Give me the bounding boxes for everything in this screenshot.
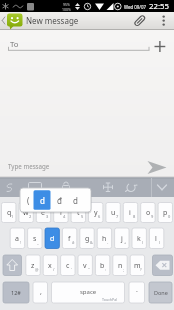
staticText: 9 <box>151 214 154 219</box>
staticText: 100% <box>62 7 71 12</box>
staticText: TouchPal <box>102 297 118 302</box>
staticText: space <box>80 288 97 296</box>
staticText: - <box>107 240 109 245</box>
staticText: # <box>72 240 75 245</box>
staticText: Type message <box>8 162 50 170</box>
staticText: w <box>23 208 29 218</box>
staticText: Wed 09/07 <box>124 4 146 10</box>
staticText: ( <box>27 195 30 206</box>
staticText: 8 <box>133 214 136 219</box>
staticText: l <box>155 234 157 244</box>
staticText: . <box>136 285 138 295</box>
staticText: đ <box>57 195 62 206</box>
staticText: 5 <box>81 214 84 219</box>
staticText: e <box>41 208 45 218</box>
staticText: 6 <box>98 214 101 219</box>
staticText: 3 <box>46 214 49 219</box>
staticText: 2 <box>29 214 32 219</box>
staticText: y <box>94 208 98 218</box>
staticText: ; <box>123 267 125 272</box>
staticText: 12# <box>11 289 21 296</box>
staticText: f <box>68 234 71 244</box>
staticText: " <box>88 267 90 272</box>
staticText: 95% <box>63 2 70 7</box>
staticText: 0 <box>168 214 171 219</box>
staticText: x <box>48 261 52 271</box>
staticText: 4 <box>63 214 66 219</box>
staticText: @ <box>35 267 39 272</box>
staticText: New message <box>26 15 79 26</box>
staticText: / <box>53 267 55 272</box>
staticText: To <box>10 39 19 50</box>
staticText: , <box>40 287 42 297</box>
staticText: : <box>105 267 107 272</box>
staticText: r <box>60 208 63 218</box>
staticText: t <box>77 208 80 218</box>
staticText: d <box>73 195 78 206</box>
staticText: c <box>66 261 70 271</box>
staticText: g <box>85 234 90 244</box>
staticText: z <box>31 261 35 271</box>
staticText: Done <box>154 289 168 296</box>
staticText: 1 <box>11 214 14 219</box>
staticText: 7 <box>116 214 119 219</box>
staticText: p <box>163 208 168 218</box>
staticText: d <box>40 195 45 206</box>
staticText: ) <box>159 240 161 245</box>
staticText: d <box>50 234 55 244</box>
staticText: q <box>7 208 12 218</box>
staticText: b <box>100 261 105 271</box>
staticText: a <box>15 234 19 244</box>
staticText: 22:55 <box>149 1 169 12</box>
staticText: n <box>118 261 123 271</box>
staticText: ! <box>20 240 22 245</box>
staticText: o <box>146 208 151 218</box>
staticText: h <box>102 234 107 244</box>
staticText: u <box>111 208 116 218</box>
staticText: v <box>83 261 87 271</box>
staticText: _ <box>37 240 39 245</box>
staticText: & <box>90 240 93 245</box>
staticText: s <box>33 234 37 244</box>
staticText: ( <box>142 240 144 245</box>
staticText: ? <box>140 267 142 272</box>
staticText: j <box>121 234 123 244</box>
staticText: i <box>129 208 131 218</box>
staticText: k <box>137 234 141 244</box>
staticText: + <box>124 240 127 245</box>
staticText: m <box>134 261 141 271</box>
staticText: ' <box>71 267 72 272</box>
